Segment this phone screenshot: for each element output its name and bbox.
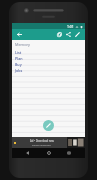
staticText: Ad • Download now [30, 139, 54, 143]
button[interactable]: Recent apps [64, 148, 74, 158]
staticText: simple organizer [32, 143, 51, 146]
staticText: Plan [15, 56, 23, 61]
button[interactable]: New note [43, 120, 54, 131]
button[interactable]: Back [15, 30, 24, 39]
staticText: Jobs [15, 68, 23, 73]
staticText: List [15, 50, 22, 55]
button[interactable]: Share [64, 30, 73, 39]
button[interactable]: Copy note [55, 30, 64, 39]
staticText: Buy [15, 62, 22, 67]
button[interactable]: Home [44, 148, 54, 158]
staticText: 1:01 [67, 24, 74, 29]
button[interactable]: Advertisement [12, 137, 85, 148]
staticText: Memory [15, 42, 30, 47]
button[interactable]: Edit [73, 30, 82, 39]
button[interactable]: Back [23, 148, 33, 158]
